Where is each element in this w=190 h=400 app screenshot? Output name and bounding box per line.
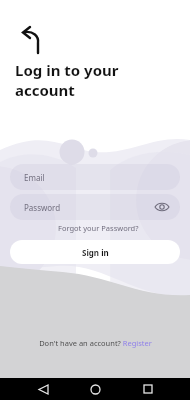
staticText: Email (24, 172, 45, 183)
button[interactable]: Back (33, 379, 53, 399)
button[interactable]: Back (7, 24, 35, 52)
staticText: Forgot your Password? (58, 223, 139, 233)
staticText: account (15, 80, 75, 100)
button[interactable]: Email (10, 164, 180, 190)
staticText: Don't have an account? Register (39, 338, 152, 348)
button[interactable]: Recents (138, 379, 158, 399)
button[interactable]: Forgot your Password? (56, 222, 141, 234)
button[interactable]: Sign in (10, 240, 180, 264)
staticText: Sign in (82, 247, 109, 258)
button[interactable]: Show password (154, 199, 170, 215)
staticText: Log in to your (15, 60, 119, 80)
button[interactable]: Password (10, 194, 180, 220)
staticText: Password (24, 202, 61, 213)
button[interactable]: Don't have an account? Register (0, 338, 190, 348)
button[interactable]: Home (85, 379, 105, 399)
